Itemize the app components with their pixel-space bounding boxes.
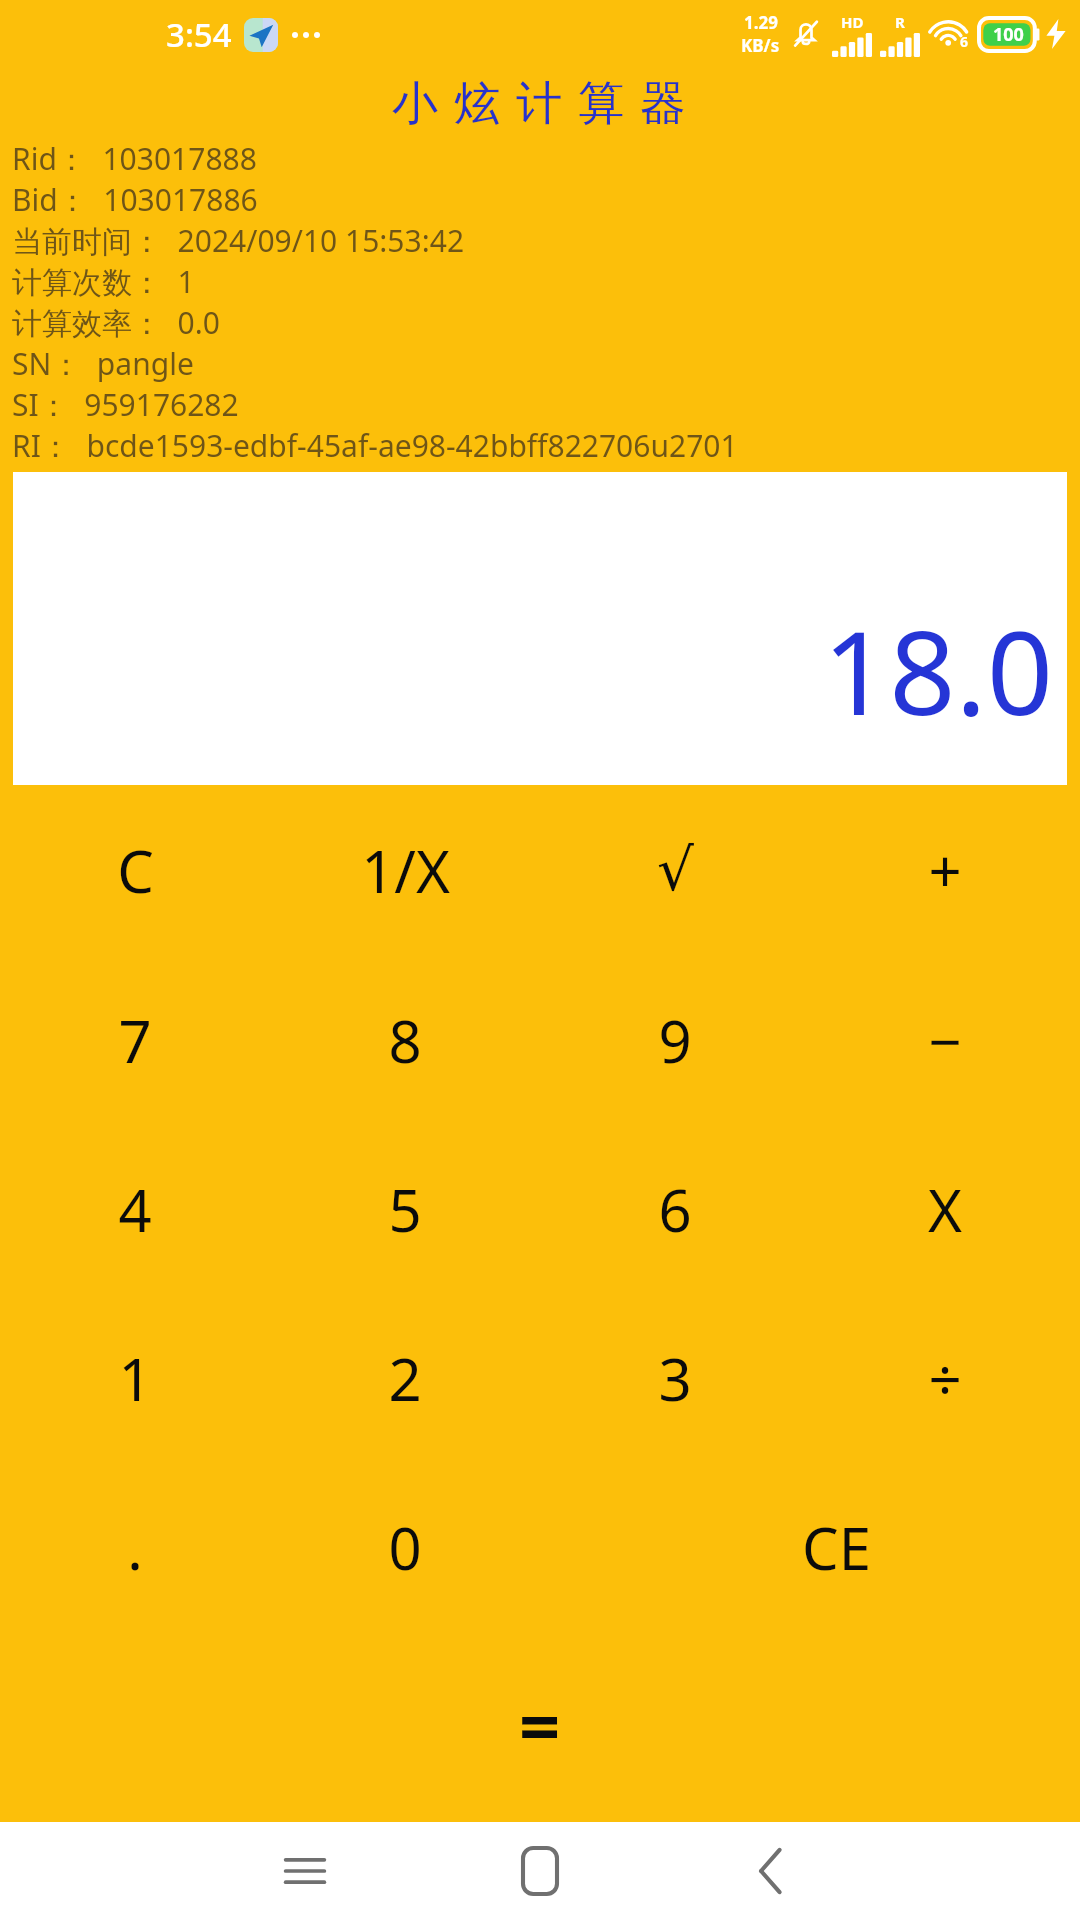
staticText: CE <box>802 1508 871 1587</box>
button[interactable]: 1 <box>0 1294 270 1463</box>
staticText: HD <box>841 12 864 32</box>
button[interactable]: 4 <box>0 1125 270 1294</box>
staticText: 5 <box>388 1170 422 1249</box>
button[interactable]: 9 <box>540 955 810 1125</box>
button[interactable]: X <box>810 1125 1080 1294</box>
button[interactable]: 5 <box>270 1125 540 1294</box>
staticText: C <box>117 831 154 910</box>
staticText: + <box>928 831 962 910</box>
button[interactable]: + <box>810 785 1080 955</box>
button[interactable]: ÷ <box>810 1294 1080 1463</box>
staticText: = <box>519 1676 561 1774</box>
staticText: 计算效率： 0.0 <box>12 302 220 343</box>
staticText: SI： 959176282 <box>12 384 239 425</box>
button[interactable]: 7 <box>0 955 270 1125</box>
staticText: ÷ <box>928 1339 962 1418</box>
staticText: − <box>928 1001 962 1080</box>
staticText: 小 炫 计 算 器 <box>392 70 688 133</box>
staticText: 1.29 <box>744 11 778 34</box>
staticText: 7 <box>118 1001 152 1080</box>
button[interactable]: Home <box>485 1822 595 1920</box>
button[interactable]: . <box>0 1463 270 1632</box>
staticText: 9 <box>658 1001 692 1080</box>
staticText: 6 <box>658 1170 692 1249</box>
staticText: . <box>127 1508 143 1587</box>
staticText: X <box>928 1170 962 1249</box>
staticText: 8 <box>388 1001 422 1080</box>
staticText: Bid： 103017886 <box>12 179 258 220</box>
button[interactable]: Back <box>715 1822 825 1920</box>
staticText: Rid： 103017888 <box>12 138 257 179</box>
staticText: 当前时间： 2024/09/10 15:53:42 <box>12 220 465 261</box>
staticText: 100 <box>993 22 1024 47</box>
button[interactable]: 8 <box>270 955 540 1125</box>
button[interactable]: 1/X <box>270 785 540 955</box>
button[interactable]: Recent apps <box>250 1822 360 1920</box>
staticText: 计算次数： 1 <box>12 261 195 302</box>
button[interactable]: √ <box>540 785 810 955</box>
button[interactable]: 2 <box>270 1294 540 1463</box>
button[interactable]: 0 <box>270 1463 540 1632</box>
button[interactable]: − <box>810 955 1080 1125</box>
button[interactable]: = <box>450 1632 630 1818</box>
staticText: RI： bcde1593-edbf-45af-ae98-42bbff822706… <box>12 425 738 466</box>
staticText: 2 <box>388 1339 422 1418</box>
staticText: 0 <box>388 1508 422 1587</box>
staticText: 3 <box>658 1339 692 1418</box>
staticText: 3:54 <box>166 12 232 57</box>
staticText: 1/X <box>361 831 450 910</box>
staticText: KB/s <box>741 34 780 57</box>
staticText: 18.0 <box>822 591 1053 749</box>
staticText: 1 <box>118 1339 152 1418</box>
button[interactable]: 6 <box>540 1125 810 1294</box>
staticText: SN： pangle <box>12 343 194 384</box>
staticText: 6 <box>960 32 969 51</box>
button[interactable]: CE <box>751 1463 921 1632</box>
button[interactable]: 3 <box>540 1294 810 1463</box>
staticText: √ <box>657 836 694 904</box>
staticText: 4 <box>118 1170 152 1249</box>
button[interactable]: C <box>0 785 270 955</box>
staticText: R <box>895 12 905 32</box>
